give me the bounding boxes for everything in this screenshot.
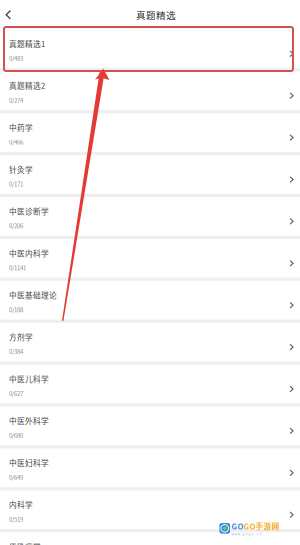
- button[interactable]: 中医基础理论: [0, 281, 300, 319]
- staticText: 0/274: [9, 96, 23, 104]
- staticText: 方剂学: [9, 331, 33, 342]
- staticText: 内科学: [9, 499, 33, 510]
- staticText: 中医诊断学: [9, 206, 49, 217]
- staticText: w w w . g o g o . c n: [231, 532, 261, 536]
- staticText: 真题精选2: [9, 80, 45, 91]
- staticText: 0/627: [9, 389, 23, 398]
- staticText: 中医外科学: [9, 415, 49, 426]
- staticText: 传染病学: [9, 541, 41, 545]
- button[interactable]: 方剂学: [0, 323, 300, 361]
- staticText: 针灸学: [9, 164, 33, 175]
- button[interactable]: 内科学: [0, 490, 300, 529]
- staticText: 中医妇科学: [9, 457, 49, 468]
- staticText: 0/649: [9, 473, 23, 482]
- button[interactable]: 中医外科学: [0, 407, 300, 445]
- button[interactable]: 真题精选1: [0, 29, 300, 68]
- staticText: 真题精选1: [9, 38, 45, 49]
- staticText: 中医内科学: [9, 248, 49, 259]
- staticText: 0/188: [9, 305, 23, 314]
- staticText: 0/171: [9, 179, 23, 188]
- staticText: 中药学: [9, 122, 33, 133]
- staticText: 0/680: [9, 431, 23, 440]
- staticText: 手游网: [255, 520, 279, 532]
- staticText: 0/384: [9, 347, 23, 356]
- button[interactable]: 中医内科学: [0, 239, 300, 278]
- staticText: 中医儿科学: [9, 373, 49, 384]
- button[interactable]: 传染病学: [0, 532, 300, 545]
- button[interactable]: 真题精选2: [0, 71, 300, 110]
- staticText: 真题精选: [136, 8, 176, 22]
- staticText: 0/483: [9, 54, 23, 63]
- button[interactable]: 中医妇科学: [0, 448, 300, 487]
- staticText: 0/206: [9, 221, 23, 230]
- button[interactable]: 针灸学: [0, 155, 300, 194]
- staticText: GO: [231, 520, 243, 532]
- staticText: 0/466: [9, 137, 23, 146]
- button[interactable]: 中医诊断学: [0, 197, 300, 236]
- staticText: GO: [243, 520, 255, 532]
- button[interactable]: 中医儿科学: [0, 365, 300, 403]
- staticText: 中医基础理论: [9, 289, 57, 301]
- button[interactable]: 中药学: [0, 113, 300, 152]
- staticText: 0/1141: [9, 263, 26, 272]
- button[interactable]: Back: [0, 1, 21, 29]
- staticText: 0/519: [9, 515, 23, 523]
